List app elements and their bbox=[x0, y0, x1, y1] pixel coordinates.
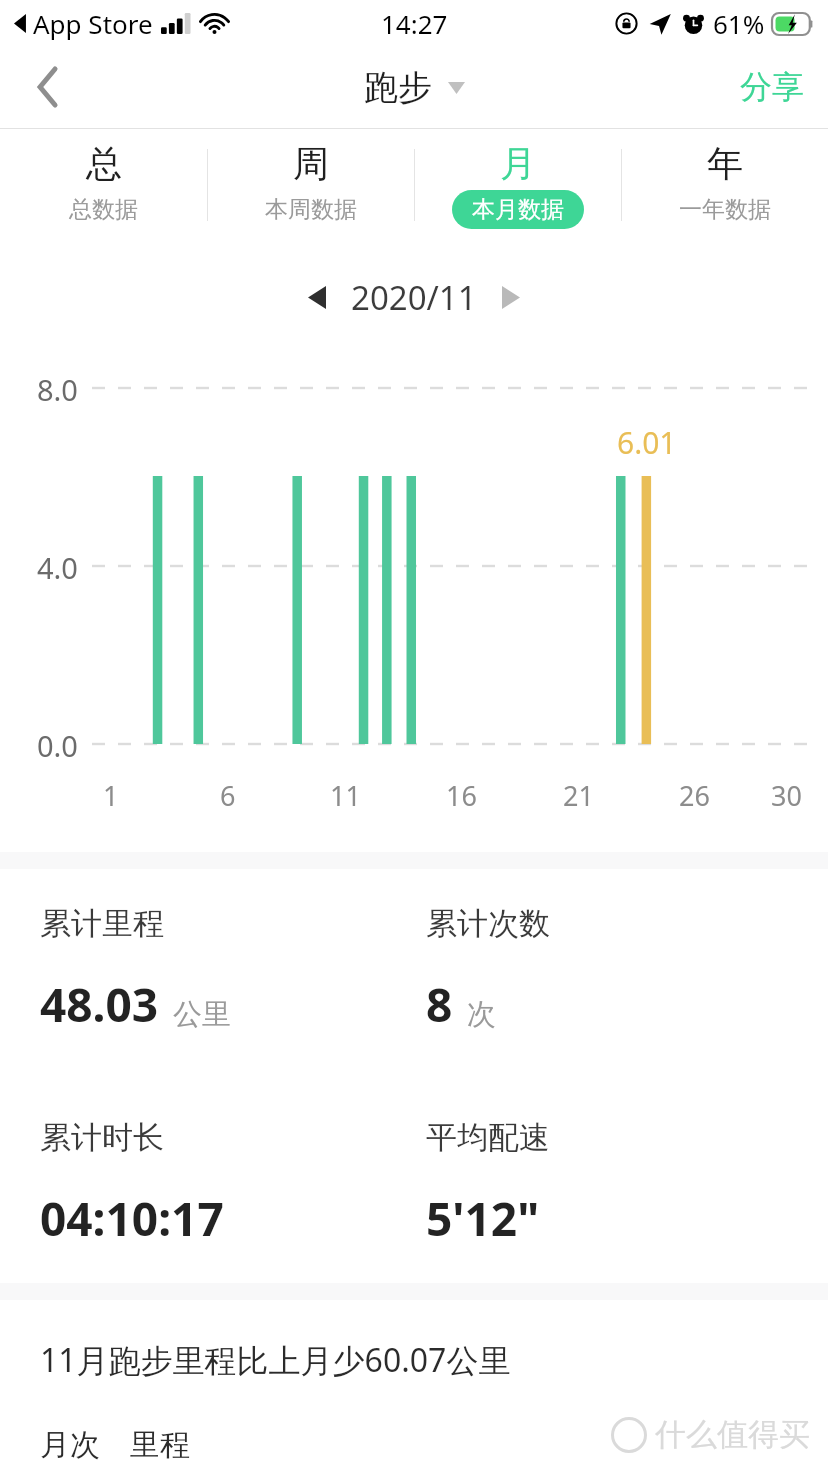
staticText: 2020/11 bbox=[351, 275, 477, 320]
button[interactable]: 年 bbox=[622, 129, 828, 241]
staticText: 48.03 bbox=[40, 973, 159, 1036]
staticText: 14:27 bbox=[381, 6, 448, 41]
staticText: 1 bbox=[103, 777, 119, 814]
button[interactable]: 总 bbox=[0, 129, 207, 241]
button[interactable]: 分享 bbox=[740, 46, 804, 128]
staticText: 8.0 bbox=[37, 370, 78, 409]
staticText: 16 bbox=[446, 777, 477, 814]
staticText: 11 bbox=[330, 777, 361, 814]
staticText: 分享 bbox=[740, 67, 804, 107]
staticText: 总数据 bbox=[69, 195, 138, 224]
staticText: 周 bbox=[293, 141, 329, 186]
staticText: 一年数据 bbox=[679, 195, 771, 224]
staticText: 本周数据 bbox=[265, 195, 357, 224]
staticText: 公里 bbox=[173, 996, 231, 1033]
staticText: 5'12" bbox=[426, 1187, 540, 1250]
staticText: 月次 bbox=[40, 1426, 100, 1464]
button[interactable]: Next month bbox=[483, 269, 539, 325]
button[interactable]: 累计次数 bbox=[426, 904, 828, 1036]
button[interactable]: 累计里程 bbox=[40, 904, 414, 1036]
staticText: 04:10:17 bbox=[40, 1187, 224, 1250]
staticText: 里程 bbox=[130, 1426, 190, 1464]
button[interactable]: 周 bbox=[208, 129, 414, 241]
button[interactable]: 累计时长 bbox=[40, 1118, 414, 1250]
staticText: 平均配速 bbox=[426, 1118, 550, 1157]
staticText: 0.0 bbox=[37, 726, 78, 765]
staticText: 6 bbox=[220, 777, 236, 814]
button[interactable]: Back bbox=[0, 46, 96, 128]
staticText: 次 bbox=[467, 996, 496, 1033]
button[interactable]: 跑步 bbox=[364, 66, 465, 109]
staticText: 61% bbox=[713, 6, 765, 41]
staticText: 年 bbox=[707, 141, 743, 186]
staticText: 总 bbox=[86, 141, 122, 186]
button[interactable]: 月 bbox=[415, 129, 621, 241]
button[interactable]: 平均配速 bbox=[426, 1118, 828, 1250]
staticText: 跑步 bbox=[364, 66, 432, 109]
staticText: 6.01 bbox=[617, 422, 677, 463]
staticText: 11月跑步里程比上月少60.07公里 bbox=[40, 1338, 511, 1382]
staticText: 21 bbox=[563, 777, 594, 814]
staticText: App Store bbox=[33, 6, 153, 41]
staticText: 26 bbox=[679, 777, 710, 814]
button[interactable]: Previous month bbox=[289, 269, 345, 325]
staticText: 累计里程 bbox=[40, 904, 164, 943]
staticText: 累计时长 bbox=[40, 1118, 164, 1157]
staticText: 30 bbox=[771, 777, 802, 814]
staticText: 4.0 bbox=[37, 548, 78, 587]
staticText: 什么值得买 bbox=[655, 1415, 810, 1454]
staticText: 月 bbox=[500, 141, 536, 186]
staticText: 累计次数 bbox=[426, 904, 550, 943]
staticText: 本月数据 bbox=[472, 195, 564, 224]
staticText: 8 bbox=[426, 973, 453, 1036]
